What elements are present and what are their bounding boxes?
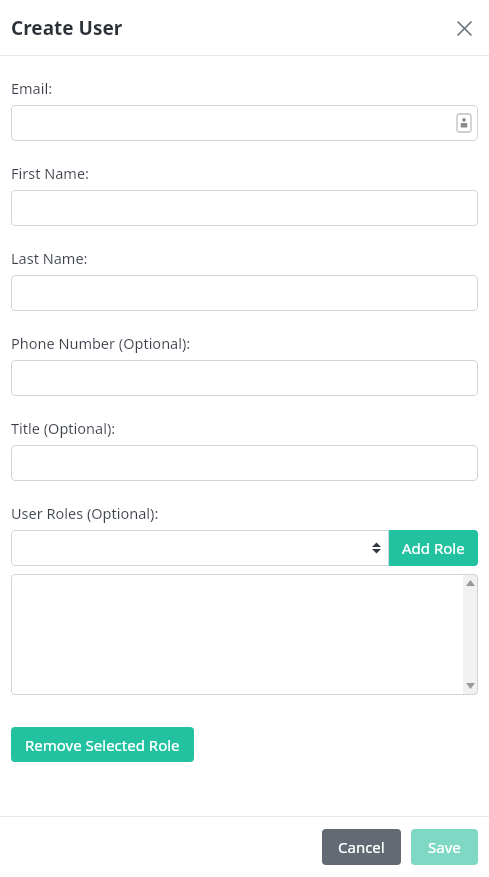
button[interactable]: Autofill contact (457, 114, 471, 132)
button[interactable]: Add Role (389, 530, 478, 566)
staticText: Remove Selected Role (25, 735, 180, 755)
button[interactable]: Close (451, 15, 477, 41)
staticText: Create User (11, 15, 123, 41)
staticText: Cancel (338, 837, 385, 857)
staticText: Save (428, 837, 461, 857)
staticText: User Roles (Optional): (11, 503, 159, 523)
button[interactable]: Save (411, 829, 478, 865)
staticText: Add Role (402, 538, 465, 558)
button[interactable]: Autofill contact (11, 105, 478, 141)
button[interactable]: Select role (11, 530, 389, 566)
button[interactable] (11, 360, 478, 396)
button[interactable]: Cancel (322, 829, 401, 865)
staticText: Email: (11, 78, 53, 98)
staticText: Last Name: (11, 248, 88, 268)
button[interactable]: Remove Selected Role (11, 727, 194, 762)
staticText: First Name: (11, 163, 89, 183)
staticText: Title (Optional): (11, 418, 116, 438)
button[interactable] (11, 574, 478, 695)
button[interactable] (11, 190, 478, 226)
button[interactable] (11, 445, 478, 481)
button[interactable] (11, 275, 478, 311)
staticText: Phone Number (Optional): (11, 333, 191, 353)
